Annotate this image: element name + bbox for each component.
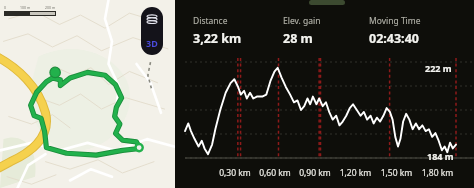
button[interactable]: Elev. gain [283, 15, 369, 47]
staticText: 28 m [283, 30, 313, 47]
staticText: 0 [4, 5, 7, 10]
button[interactable]: Moving Time [369, 15, 464, 47]
staticText: 02:43:40 [369, 30, 419, 47]
button[interactable]: Distance [193, 15, 283, 47]
staticText: 100 m [20, 5, 31, 10]
staticText: 1,80 km [417, 167, 458, 179]
staticText: 200 m [45, 5, 56, 10]
staticText: 3D [146, 37, 158, 49]
staticText: Moving Time [369, 15, 421, 27]
button[interactable]: 3D [141, 31, 163, 55]
staticText: 0,60 km [255, 167, 295, 179]
staticText: Distance [193, 15, 228, 27]
staticText: 0,30 km [215, 167, 255, 179]
button[interactable]: Map layers [141, 7, 163, 31]
staticText: 1,50 km [376, 167, 417, 179]
staticText: 3,22 km [193, 30, 242, 47]
staticText: 184 m [427, 150, 454, 162]
staticText: 1,20 km [335, 167, 376, 179]
staticText: 0,90 km [295, 167, 335, 179]
staticText: 222 m [425, 62, 452, 74]
staticText: Elev. gain [283, 15, 321, 27]
